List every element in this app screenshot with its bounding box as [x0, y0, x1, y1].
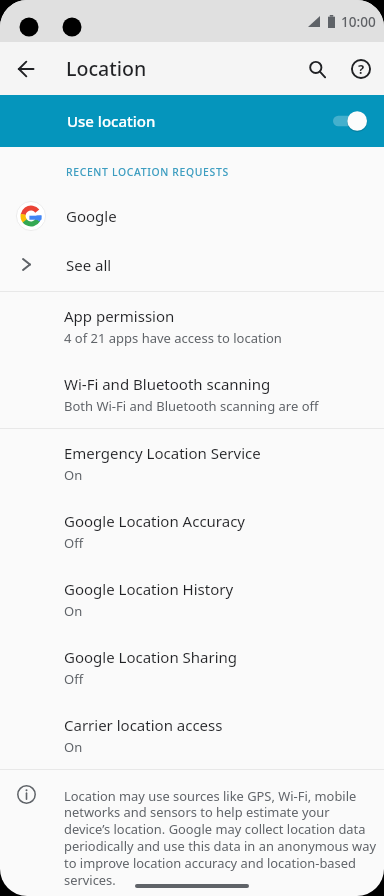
staticText: Location may use sources like GPS, Wi-Fi…: [64, 787, 377, 889]
button[interactable]: Emergency Location Service: [0, 429, 384, 497]
staticText: On: [64, 602, 83, 620]
button[interactable]: Google Location Accuracy: [0, 497, 384, 565]
staticText: Use location: [67, 111, 156, 131]
button[interactable]: See all: [0, 238, 384, 291]
staticText: Google Location Sharing: [64, 647, 238, 667]
staticText: See all: [66, 255, 112, 275]
button[interactable]: Google Location History: [0, 565, 384, 633]
staticText: Google: [66, 206, 117, 226]
staticText: Google Location History: [64, 579, 234, 599]
button[interactable]: Help: [339, 47, 383, 91]
staticText: Off: [64, 534, 84, 552]
button[interactable]: Carrier location access: [0, 701, 384, 769]
staticText: Both Wi-Fi and Bluetooth scanning are of…: [64, 397, 319, 415]
staticText: Google Location Accuracy: [64, 511, 246, 531]
staticText: Carrier location access: [64, 715, 223, 735]
button[interactable]: Search: [295, 47, 339, 91]
button[interactable]: Google: [0, 194, 384, 238]
staticText: Off: [64, 670, 84, 688]
button[interactable]: Google Location Sharing: [0, 633, 384, 701]
staticText: Emergency Location Service: [64, 443, 261, 463]
staticText: App permission: [64, 306, 175, 326]
staticText: On: [64, 466, 83, 484]
staticText: Location: [66, 55, 147, 82]
staticText: On: [64, 738, 83, 756]
staticText: RECENT LOCATION REQUESTS: [66, 165, 229, 179]
button[interactable]: App permission: [0, 292, 384, 360]
staticText: 4 of 21 apps have access to location: [64, 329, 282, 347]
staticText: ?: [358, 60, 365, 78]
staticText: Wi-Fi and Bluetooth scanning: [64, 374, 271, 394]
button[interactable]: Use location: [0, 95, 384, 147]
staticText: 10:00: [341, 12, 376, 31]
button[interactable]: Wi-Fi and Bluetooth scanning: [0, 360, 384, 428]
button[interactable]: Back: [4, 47, 48, 91]
